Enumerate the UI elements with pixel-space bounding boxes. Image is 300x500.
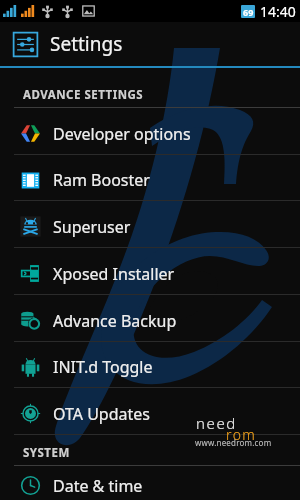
button[interactable]: OTA Updates — [0, 388, 300, 434]
button[interactable]: Developer options — [0, 108, 300, 154]
staticText: Ram Booster — [53, 169, 150, 191]
button[interactable]: Xposed Installer — [0, 248, 300, 294]
staticText: Advance Backup — [53, 310, 177, 332]
staticText: www.needrom.com — [195, 437, 272, 448]
button[interactable]: Advance Backup — [0, 295, 300, 341]
button[interactable]: Date & time — [0, 466, 300, 500]
button[interactable]: INIT.d Toggle — [0, 342, 300, 387]
staticText: Superuser — [53, 216, 131, 238]
staticText: 69 — [243, 6, 254, 18]
staticText: Settings — [50, 31, 123, 57]
staticText: ADVANCE SETTINGS — [23, 87, 144, 103]
button[interactable]: Ram Booster — [0, 155, 300, 200]
staticText: INIT.d Toggle — [53, 356, 153, 378]
staticText: Date & time — [53, 475, 143, 497]
staticText: Developer options — [53, 123, 191, 145]
staticText: need — [196, 413, 237, 433]
button[interactable]: Settings — [0, 22, 300, 66]
staticText: 14:40 — [260, 2, 296, 21]
staticText: Xposed Installer — [53, 263, 175, 285]
button[interactable]: Superuser — [0, 201, 300, 247]
staticText: OTA Updates — [53, 403, 150, 425]
staticText: SYSTEM — [23, 445, 70, 461]
staticText: rom — [226, 425, 257, 444]
